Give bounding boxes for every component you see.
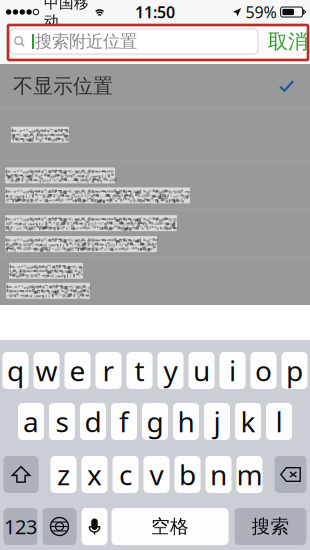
button[interactable]: q bbox=[2, 352, 28, 389]
staticText: l bbox=[275, 403, 282, 440]
staticText: e bbox=[69, 352, 85, 389]
button[interactable]: z bbox=[50, 456, 76, 493]
button[interactable]: u bbox=[188, 352, 214, 389]
button[interactable]: l bbox=[266, 403, 292, 440]
staticText: 59% bbox=[246, 1, 277, 23]
button[interactable]: 搜索 bbox=[234, 508, 306, 545]
staticText: g bbox=[146, 403, 163, 440]
staticText: 搜索 bbox=[251, 515, 289, 538]
button[interactable]: Delete bbox=[274, 456, 306, 493]
staticText: k bbox=[240, 403, 255, 440]
staticText: f bbox=[119, 403, 129, 440]
button[interactable] bbox=[0, 210, 310, 257]
staticText: s bbox=[55, 403, 68, 440]
button[interactable]: n bbox=[205, 456, 231, 493]
button[interactable]: g bbox=[142, 403, 168, 440]
button[interactable]: 取消 bbox=[267, 29, 309, 54]
staticText: p bbox=[286, 352, 303, 389]
button[interactable]: i bbox=[219, 352, 245, 389]
button[interactable]: h bbox=[173, 403, 199, 440]
staticText: h bbox=[177, 403, 194, 440]
button[interactable]: j bbox=[204, 403, 230, 440]
staticText: c bbox=[119, 456, 132, 493]
button[interactable]: s bbox=[49, 403, 75, 440]
button[interactable]: o bbox=[250, 352, 276, 389]
staticText: a bbox=[23, 403, 39, 440]
button[interactable] bbox=[0, 109, 310, 161]
button[interactable]: a bbox=[18, 403, 44, 440]
button[interactable]: m bbox=[236, 456, 262, 493]
staticText: 空格 bbox=[151, 515, 189, 538]
button[interactable]: w bbox=[33, 352, 59, 389]
button[interactable]: b bbox=[174, 456, 200, 493]
staticText: d bbox=[84, 403, 101, 440]
button[interactable]: Next keyboard bbox=[42, 508, 76, 545]
staticText: t bbox=[134, 352, 144, 389]
staticText: 取消 bbox=[268, 29, 308, 54]
staticText: w bbox=[35, 352, 57, 389]
button[interactable]: 不显示位置 bbox=[0, 64, 310, 108]
button[interactable]: y bbox=[157, 352, 183, 389]
staticText: 123 bbox=[4, 513, 37, 540]
staticText: u bbox=[193, 352, 210, 389]
staticText: 搜索附近位置 bbox=[35, 31, 137, 52]
staticText: x bbox=[87, 456, 102, 493]
staticText: m bbox=[236, 456, 262, 493]
staticText: y bbox=[163, 352, 177, 389]
staticText: b bbox=[179, 456, 196, 493]
staticText: n bbox=[210, 456, 227, 493]
button[interactable]: k bbox=[235, 403, 261, 440]
button[interactable]: Dictation bbox=[81, 508, 107, 545]
button[interactable]: p bbox=[281, 352, 307, 389]
staticText: o bbox=[255, 352, 272, 389]
button[interactable]: d bbox=[80, 403, 106, 440]
button[interactable]: 123 bbox=[3, 508, 37, 545]
button[interactable]: e bbox=[64, 352, 90, 389]
button[interactable]: c bbox=[112, 456, 138, 493]
button[interactable]: x bbox=[81, 456, 107, 493]
staticText: v bbox=[149, 456, 163, 493]
button[interactable] bbox=[0, 258, 310, 304]
button[interactable]: v bbox=[143, 456, 169, 493]
button[interactable]: t bbox=[126, 352, 152, 389]
button[interactable]: r bbox=[95, 352, 121, 389]
staticText: 不显示位置 bbox=[13, 74, 113, 98]
staticText: i bbox=[229, 352, 236, 389]
button[interactable]: 空格 bbox=[111, 508, 228, 545]
button[interactable]: f bbox=[111, 403, 137, 440]
staticText: 中国移动 bbox=[44, 0, 89, 30]
button[interactable] bbox=[0, 161, 310, 209]
staticText: z bbox=[57, 456, 70, 493]
staticText: q bbox=[7, 352, 24, 389]
staticText: r bbox=[102, 352, 114, 389]
staticText: j bbox=[213, 403, 220, 440]
button[interactable]: Shift bbox=[3, 456, 38, 493]
staticText: 11:50 bbox=[135, 1, 175, 23]
